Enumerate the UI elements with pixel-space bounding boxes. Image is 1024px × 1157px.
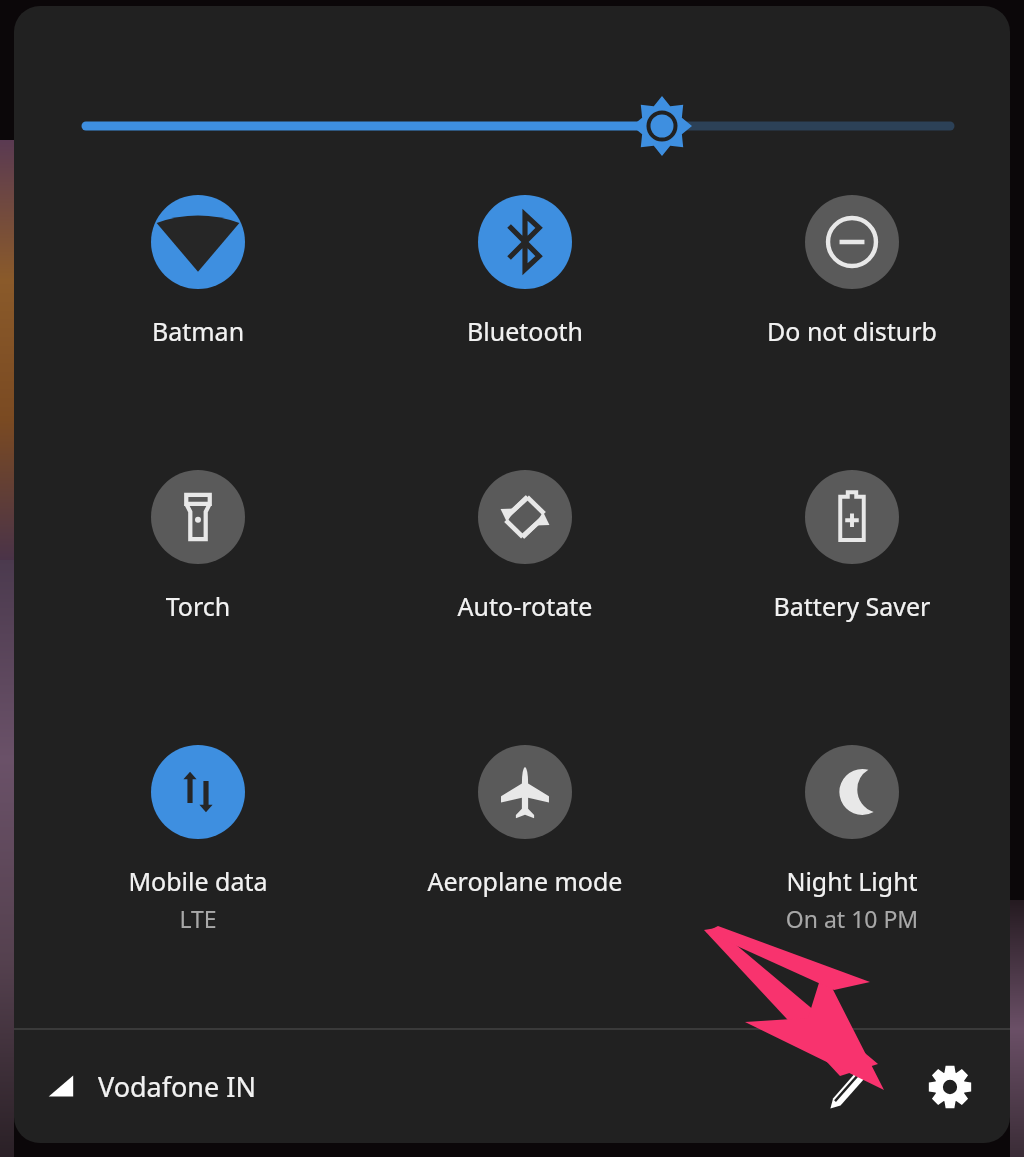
staticText: Bluetooth — [378, 314, 672, 348]
button[interactable]: Do not disturb — [705, 186, 999, 436]
button[interactable]: Bluetooth — [378, 186, 672, 436]
staticText: Vodafone IN — [98, 1068, 256, 1105]
button[interactable]: Auto-rotate — [378, 461, 672, 711]
staticText: Battery Saver — [705, 589, 999, 623]
staticText: Batman — [51, 314, 345, 348]
staticText: Do not disturb — [705, 314, 999, 348]
button[interactable]: Settings — [914, 1051, 986, 1123]
staticText: Auto-rotate — [378, 589, 672, 623]
button[interactable]: Battery Saver — [705, 461, 999, 711]
button[interactable]: Torch — [51, 461, 345, 711]
button[interactable]: Mobile data — [51, 736, 345, 986]
staticText: LTE — [51, 903, 345, 934]
staticText: Torch — [51, 589, 345, 623]
button[interactable]: Edit tiles — [812, 1051, 884, 1123]
staticText: On at 10 PM — [705, 903, 999, 934]
staticText: Aeroplane mode — [378, 864, 672, 898]
button[interactable]: Batman — [51, 186, 345, 436]
button[interactable]: Aeroplane mode — [378, 736, 672, 986]
button[interactable]: Night Light — [705, 736, 999, 986]
staticText: Night Light — [705, 864, 999, 898]
button[interactable]: Brightness — [72, 86, 952, 166]
button[interactable]: Vodafone IN — [46, 1068, 256, 1105]
staticText: Mobile data — [51, 864, 345, 898]
